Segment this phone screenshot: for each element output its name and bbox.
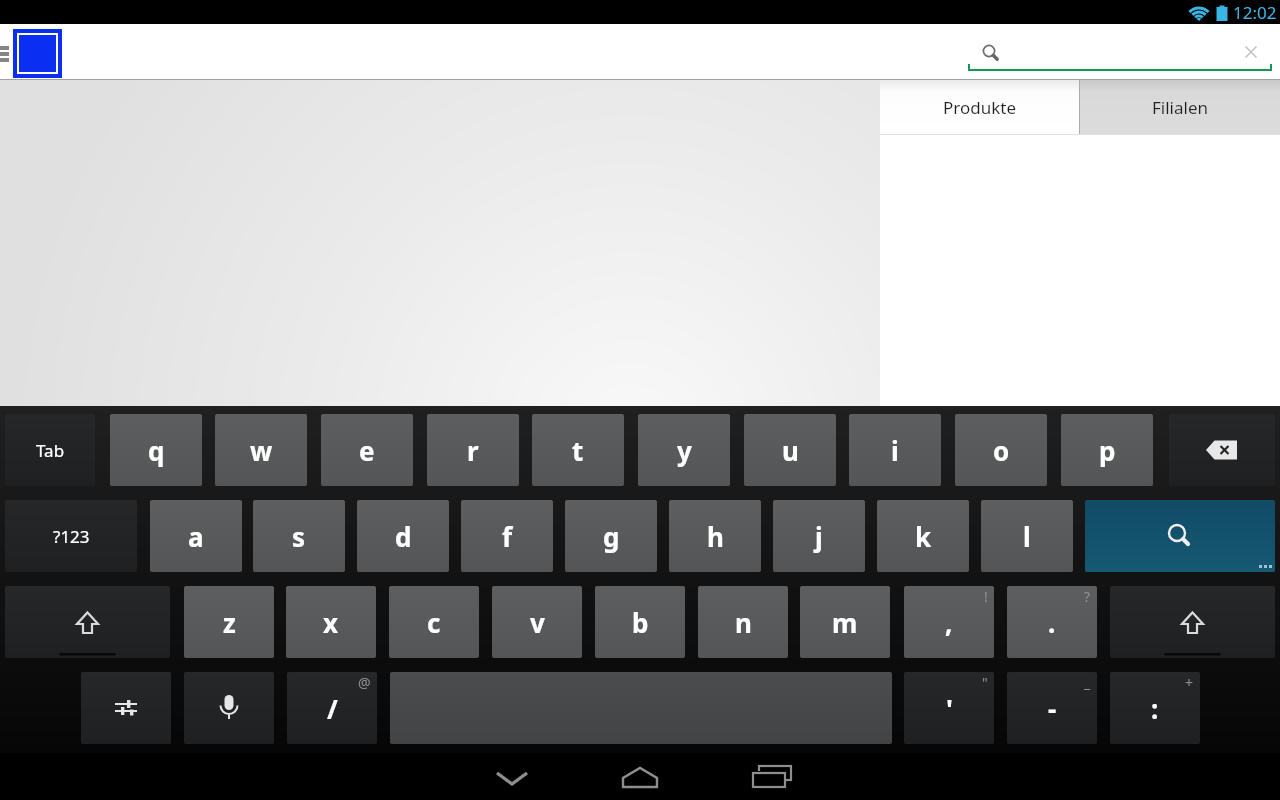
staticText: ?123 — [53, 525, 90, 548]
staticText: - — [1048, 691, 1057, 726]
staticText: y — [677, 433, 692, 468]
staticText: ! — [984, 587, 988, 606]
staticText: o — [993, 433, 1010, 468]
button[interactable]: o — [955, 414, 1047, 486]
button[interactable]: t — [532, 414, 624, 486]
button[interactable]: r — [427, 414, 519, 486]
button[interactable] — [184, 672, 274, 744]
button[interactable] — [5, 586, 170, 658]
staticText: Filialen — [1152, 96, 1208, 119]
staticText: g — [603, 519, 620, 554]
staticText: r — [467, 433, 479, 468]
staticText: + — [1185, 673, 1194, 692]
staticText: l — [1023, 519, 1031, 554]
staticText: e — [359, 433, 375, 468]
staticText: v — [530, 605, 545, 640]
button[interactable]: c — [389, 586, 479, 658]
staticText: m — [832, 605, 858, 640]
staticText: 12:02 — [1233, 1, 1277, 24]
button[interactable]: j — [773, 500, 865, 572]
button[interactable]: - — [1007, 672, 1097, 744]
staticText: ? — [1084, 587, 1091, 606]
staticText: x — [323, 605, 339, 640]
button[interactable] — [1110, 586, 1275, 658]
button[interactable]: f — [461, 500, 553, 572]
staticText: : — [1151, 691, 1159, 726]
button[interactable]: q — [110, 414, 202, 486]
button[interactable]: ?123 — [5, 500, 137, 572]
staticText: / — [327, 691, 338, 726]
staticText: h — [707, 519, 724, 554]
staticText: k — [915, 519, 932, 554]
button[interactable]: s — [253, 500, 345, 572]
button[interactable]: ' — [904, 672, 994, 744]
staticText: c — [427, 605, 441, 640]
staticText: p — [1099, 433, 1116, 468]
button[interactable]: / — [287, 672, 377, 744]
staticText: " — [982, 673, 988, 692]
button[interactable] — [608, 753, 672, 800]
button[interactable]: b — [595, 586, 685, 658]
staticText: _ — [1084, 673, 1091, 692]
staticText: s — [292, 519, 306, 554]
staticText: j — [815, 519, 823, 554]
button[interactable] — [81, 672, 171, 744]
button[interactable]: e — [321, 414, 413, 486]
button[interactable]: i — [849, 414, 941, 486]
button[interactable]: k — [877, 500, 969, 572]
button[interactable]: a — [150, 500, 242, 572]
staticText: Produkte — [943, 96, 1017, 119]
staticText: , — [945, 605, 953, 640]
button[interactable] — [736, 753, 800, 800]
button[interactable]: , — [904, 586, 994, 658]
staticText: @ — [358, 673, 371, 692]
staticText: a — [188, 519, 204, 554]
button[interactable] — [480, 753, 544, 800]
button[interactable]: h — [669, 500, 761, 572]
button[interactable] — [1085, 500, 1275, 572]
staticText: q — [148, 433, 165, 468]
button[interactable]: Tab — [5, 414, 95, 486]
button[interactable]: Produkte — [880, 80, 1079, 134]
button[interactable]: u — [744, 414, 836, 486]
button[interactable] — [1240, 41, 1262, 63]
button[interactable]: z — [184, 586, 274, 658]
button[interactable]: v — [492, 586, 582, 658]
staticText: f — [502, 519, 513, 554]
button[interactable]: m — [800, 586, 890, 658]
staticText: z — [223, 605, 236, 640]
button[interactable]: Filialen — [1080, 80, 1280, 134]
button[interactable]: g — [565, 500, 657, 572]
button[interactable]: p — [1061, 414, 1153, 486]
button[interactable]: : — [1110, 672, 1200, 744]
button[interactable] — [1169, 414, 1275, 486]
staticText: w — [250, 433, 273, 468]
button[interactable]: d — [357, 500, 449, 572]
button[interactable]: l — [981, 500, 1073, 572]
button[interactable] — [13, 29, 62, 78]
button[interactable]: w — [215, 414, 307, 486]
staticText: t — [572, 433, 584, 468]
staticText: u — [782, 433, 799, 468]
staticText: n — [735, 605, 752, 640]
button[interactable]: n — [698, 586, 788, 658]
staticText: ' — [946, 691, 953, 726]
staticText: i — [891, 433, 899, 468]
staticText: Tab — [36, 439, 65, 462]
button[interactable]: . — [1007, 586, 1097, 658]
staticText: b — [632, 605, 649, 640]
button[interactable]: x — [286, 586, 376, 658]
button[interactable]: y — [638, 414, 730, 486]
staticText: d — [395, 519, 412, 554]
staticText: . — [1048, 605, 1056, 640]
